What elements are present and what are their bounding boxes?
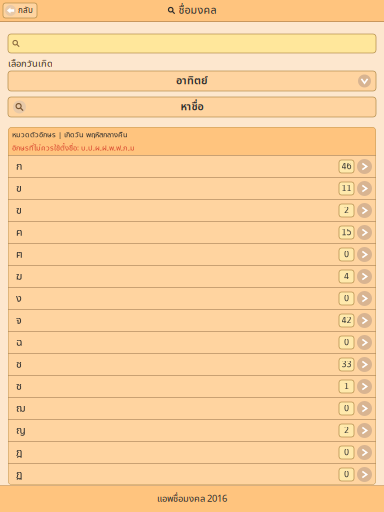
staticText: 0 — [344, 250, 349, 259]
button[interactable]: ค — [8, 222, 376, 243]
staticText: 0 — [344, 448, 349, 457]
staticText: ฆ — [16, 268, 22, 284]
staticText: 0 — [344, 338, 349, 347]
staticText: หมวดตัวอักษร | เกิดวัน พฤหัสกลางคืน — [12, 129, 128, 140]
button[interactable]: กลับ — [3, 3, 37, 18]
button[interactable]: ฆ — [8, 266, 376, 287]
staticText: อาทิตย์ — [176, 73, 208, 89]
staticText: 2 — [344, 206, 349, 215]
staticText: 0 — [344, 404, 349, 413]
staticText: ฎ — [16, 444, 22, 460]
staticText: 33 — [341, 360, 351, 369]
button[interactable]: ข — [8, 178, 376, 199]
staticText: ฃ — [16, 202, 22, 218]
button[interactable]: ฅ — [8, 244, 376, 265]
staticText: 46 — [341, 162, 351, 171]
staticText: อักษรที่ไม่ควรใช้ตั้งชื่อ: บ,ป,ผ,ฝ,พ,ฟ,ภ… — [12, 142, 135, 154]
button[interactable]: ชื่อมงคล — [161, 0, 222, 21]
staticText: ค — [16, 224, 23, 240]
staticText: 4 — [344, 272, 349, 281]
staticText: ข — [16, 180, 22, 196]
staticText: 11 — [341, 184, 351, 193]
button[interactable]: ค้นหา — [8, 34, 376, 53]
button[interactable]: ฌ — [8, 398, 376, 419]
staticText: หาชื่อ — [180, 99, 203, 115]
staticText: ซ — [16, 378, 22, 394]
staticText: ง — [16, 290, 22, 306]
button[interactable]: ก — [8, 156, 376, 177]
button[interactable]: อาทิตย์ — [8, 71, 376, 91]
staticText: ช — [16, 356, 22, 372]
staticText: จ — [16, 312, 22, 328]
button[interactable]: ฃ — [8, 200, 376, 221]
button[interactable]: ฎ — [8, 442, 376, 463]
staticText: 1 — [344, 382, 349, 391]
staticText: ชื่อมงคล — [178, 2, 216, 18]
staticText: 2 — [344, 426, 349, 435]
staticText: ฅ — [16, 246, 23, 262]
button[interactable]: ง — [8, 288, 376, 309]
staticText: ฌ — [16, 400, 26, 416]
button[interactable]: หาชื่อ — [8, 97, 376, 117]
button[interactable]: ฉ — [8, 332, 376, 353]
staticText: ญ — [16, 422, 26, 438]
staticText: 15 — [341, 228, 351, 237]
button[interactable]: จ — [8, 310, 376, 331]
staticText: 42 — [341, 316, 351, 325]
staticText: แอพชื่อมงคล 2016 — [157, 492, 227, 506]
button[interactable]: ซ — [8, 376, 376, 397]
staticText: ก — [16, 158, 22, 174]
staticText: 0 — [344, 294, 349, 303]
staticText: 0 — [344, 470, 349, 479]
staticText: ฉ — [16, 334, 22, 350]
button[interactable]: ญ — [8, 420, 376, 441]
staticText: ฏ — [16, 466, 22, 482]
staticText: เลือกวันเกิด — [8, 57, 53, 71]
button[interactable]: ฏ — [8, 464, 376, 485]
staticText: กลับ — [18, 4, 33, 17]
button[interactable]: ช — [8, 354, 376, 375]
